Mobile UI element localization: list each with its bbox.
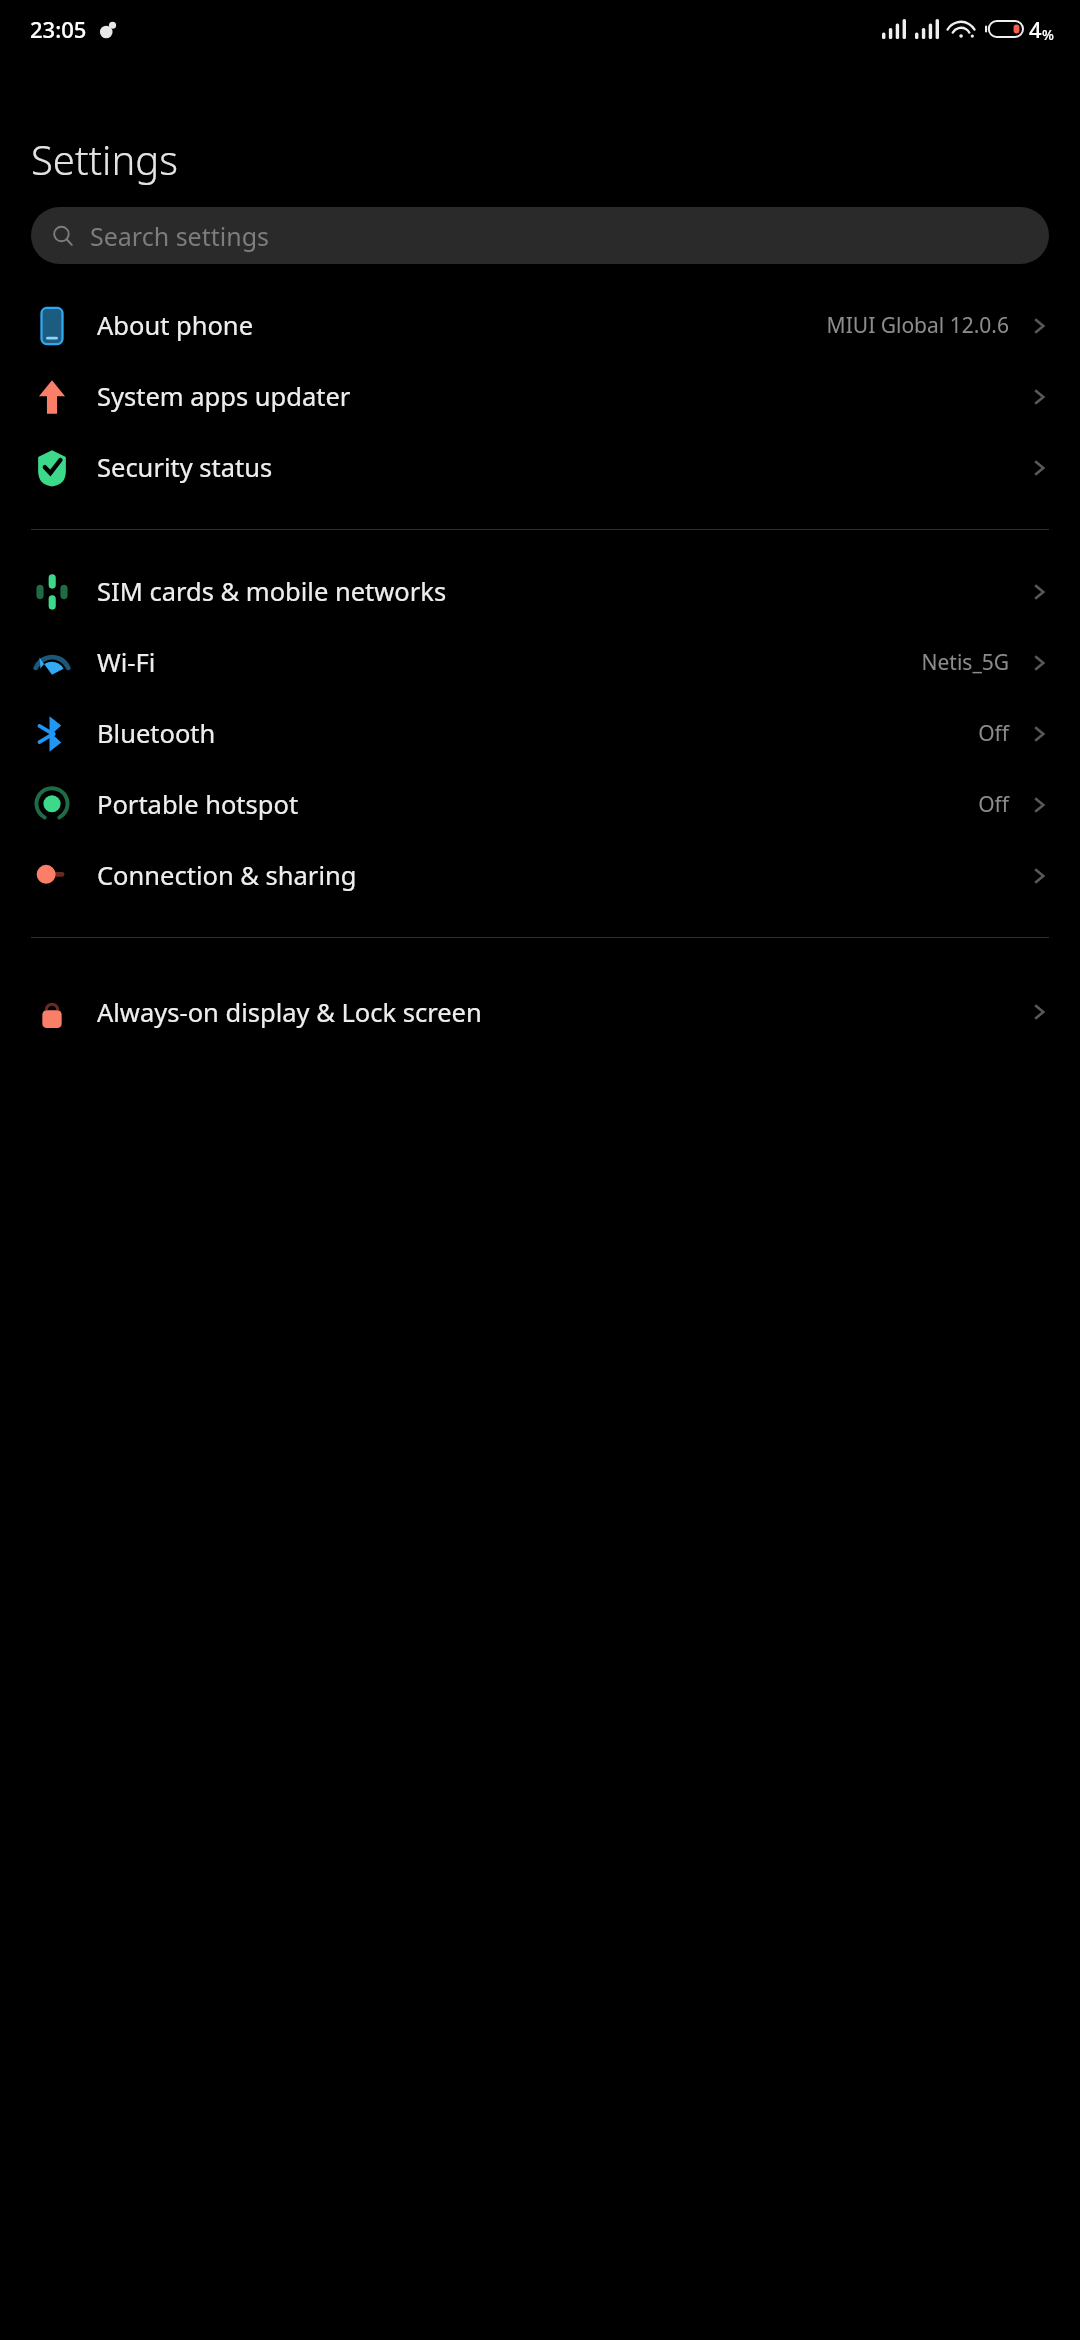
staticText: 4 <box>1029 14 1042 44</box>
staticText: Wi-Fi <box>97 645 156 680</box>
staticText: Always-on display & Lock screen <box>97 995 482 1030</box>
staticText: MIUI Global 12.0.6 <box>826 311 1009 340</box>
staticText: Connection & sharing <box>97 858 357 893</box>
staticText: Off <box>978 719 1009 748</box>
staticText: Search settings <box>90 219 270 253</box>
button[interactable]: Connection & sharing <box>0 840 1080 911</box>
staticText: About phone <box>97 308 254 343</box>
button[interactable]: Bluetooth <box>0 698 1080 769</box>
button[interactable]: Search settings <box>31 207 1049 264</box>
staticText: % <box>1042 25 1054 44</box>
button[interactable]: SIM cards & mobile networks <box>0 556 1080 627</box>
button[interactable]: Portable hotspot <box>0 769 1080 840</box>
staticText: Netis_5G <box>921 648 1009 677</box>
button[interactable]: Always-on display & Lock screen <box>0 964 1080 1060</box>
staticText: SIM cards & mobile networks <box>97 574 447 609</box>
button[interactable]: Security status <box>0 432 1080 503</box>
button[interactable]: About phone <box>0 290 1080 361</box>
staticText: Bluetooth <box>97 716 216 751</box>
staticText: Off <box>978 790 1009 819</box>
button[interactable]: System apps updater <box>0 361 1080 432</box>
staticText: Portable hotspot <box>97 787 299 822</box>
staticText: Settings <box>31 132 178 186</box>
staticText: System apps updater <box>97 379 351 414</box>
staticText: Security status <box>97 450 273 485</box>
button[interactable]: Wi-Fi <box>0 627 1080 698</box>
staticText: 23:05 <box>30 14 87 44</box>
